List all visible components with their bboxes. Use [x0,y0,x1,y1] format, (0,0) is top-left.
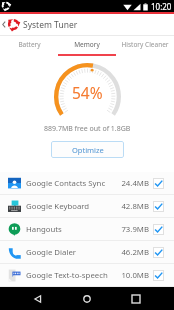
button[interactable]: Memory [58,36,116,56]
button[interactable]: Google Text-to-speech [0,264,174,287]
button[interactable]: Battery [0,36,58,56]
button[interactable]: Google Dialer [0,241,174,264]
staticText: Google Keyboard [26,201,117,212]
button[interactable]: Optimize [51,141,124,158]
staticText: Battery [18,40,41,49]
staticText: System Tuner [23,19,78,31]
staticText: 24.4MB [121,178,149,189]
staticText: Optimize [72,145,104,155]
staticText: Google Text-to-speech [26,270,117,281]
button[interactable]: Back [27,288,49,310]
button[interactable]: History Cleaner [116,36,174,56]
staticText: 889.7MB free out of 1.8GB [44,124,131,134]
staticText: 10.0MB [121,270,149,281]
staticText: 73.9MB [121,224,149,235]
staticText: 54% [72,82,103,103]
button[interactable]: Home [76,288,98,310]
button[interactable]: Hangouts [0,218,174,241]
staticText: Google Contacts Sync [26,178,117,189]
staticText: History Cleaner [121,40,169,49]
staticText: Memory [74,40,100,49]
staticText: Google Dialer [26,247,117,258]
staticText: 10:20 [151,1,172,12]
button[interactable]: Back [0,14,7,35]
staticText: Hangouts [26,224,117,235]
staticText: 46.2MB [121,247,149,258]
button[interactable]: Google Keyboard [0,195,174,218]
button[interactable]: Google Contacts Sync [0,172,174,195]
button[interactable]: Recents [125,288,147,310]
staticText: 42.8MB [121,201,149,212]
